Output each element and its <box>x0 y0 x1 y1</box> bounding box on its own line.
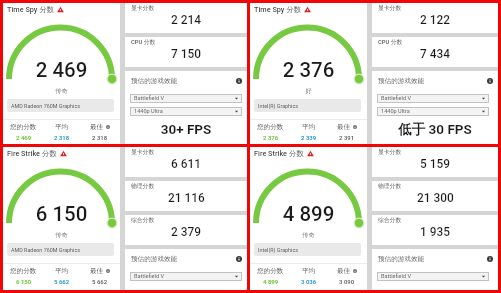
button[interactable]: 显卡分数 <box>372 147 498 177</box>
button[interactable]: 平均 <box>290 267 328 285</box>
staticText: 2 318 <box>54 134 70 141</box>
staticText: 物理分数 <box>131 182 155 189</box>
button[interactable]: Battlefield V <box>377 272 489 281</box>
staticText: 2 214 <box>171 13 201 27</box>
staticText: Battlefield V <box>134 273 165 280</box>
staticText: 1 935 <box>420 225 450 239</box>
staticText: 显卡分数 <box>378 148 402 155</box>
staticText: 平均 <box>55 123 69 131</box>
staticText: 预估的游戏效能 <box>131 255 178 263</box>
staticText: 3 036 <box>301 278 317 285</box>
staticText: 显卡分数 <box>131 148 155 155</box>
staticText: 21 116 <box>168 191 205 205</box>
staticText: 5 159 <box>420 157 450 171</box>
staticText: 2 391 <box>339 134 355 141</box>
staticText: 平均 <box>55 267 69 275</box>
button[interactable]: Info <box>487 256 493 262</box>
staticText: 6 150 <box>3 202 120 226</box>
button[interactable]: 物理分数 <box>372 181 498 211</box>
staticText: 2 379 <box>171 225 201 239</box>
staticText: 传奇 <box>3 231 120 239</box>
staticText: Fire Strike 分数 <box>254 149 304 158</box>
staticText: Fire Strike 分数 <box>7 149 57 158</box>
staticText: 最佳 <box>337 267 351 275</box>
button[interactable]: 显卡分数 <box>125 3 247 33</box>
button[interactable]: CPU 分数 <box>125 37 247 67</box>
staticText: 21 300 <box>417 191 454 205</box>
staticText: 2 469 <box>3 58 120 82</box>
button[interactable]: 您的分数 <box>251 123 290 141</box>
staticText: 传奇 <box>250 231 367 239</box>
staticText: Time Spy 分数 <box>254 5 301 14</box>
staticText: 3 090 <box>339 278 355 285</box>
button[interactable]: 最佳 <box>81 123 119 141</box>
staticText: 物理分数 <box>378 182 402 189</box>
staticText: 显卡分数 <box>131 4 155 11</box>
button[interactable]: CPU 分数 <box>372 37 498 67</box>
staticText: 最佳 <box>90 123 104 131</box>
staticText: AMD Radeon 760M Graphics <box>11 247 81 253</box>
button[interactable]: 最佳 <box>328 123 366 141</box>
button[interactable]: 平均 <box>290 123 328 141</box>
staticText: 4 899 <box>250 202 367 226</box>
staticText: 6 150 <box>16 278 32 285</box>
staticText: 传奇 <box>3 87 120 95</box>
button[interactable]: 综合分数 <box>125 215 247 245</box>
staticText: 5 662 <box>54 278 70 285</box>
staticText: 2 376 <box>250 58 367 82</box>
staticText: 7 434 <box>420 47 450 61</box>
button[interactable]: Battlefield V <box>377 94 489 103</box>
staticText: 6 611 <box>171 157 201 171</box>
staticText: 低于 30 FPS <box>372 121 498 138</box>
staticText: 您的分数 <box>10 267 37 275</box>
staticText: 您的分数 <box>257 123 284 131</box>
staticText: 最佳 <box>337 123 351 131</box>
staticText: Time Spy 分数 <box>7 5 54 14</box>
button[interactable]: 您的分数 <box>4 123 43 141</box>
staticText: 预估的游戏效能 <box>378 255 425 263</box>
staticText: 最佳 <box>90 267 104 275</box>
button[interactable]: 1440p Ultra <box>130 107 242 116</box>
button[interactable]: Battlefield V <box>130 94 242 103</box>
staticText: 平均 <box>302 267 316 275</box>
staticText: 30+ FPS <box>125 121 247 137</box>
button[interactable]: 平均 <box>43 123 81 141</box>
staticText: 2 122 <box>420 13 450 27</box>
staticText: CPU 分数 <box>131 38 156 45</box>
staticText: Battlefield V <box>134 95 165 102</box>
staticText: 2 376 <box>263 134 279 141</box>
staticText: 显卡分数 <box>378 4 402 11</box>
staticText: Intel(R) Graphics <box>258 247 298 253</box>
staticText: 1440p Ultra <box>134 108 163 115</box>
staticText: AMD Radeon 760M Graphics <box>11 103 81 109</box>
staticText: Battlefield V <box>381 95 412 102</box>
button[interactable]: 最佳 <box>328 267 366 285</box>
button[interactable]: 物理分数 <box>125 181 247 211</box>
button[interactable]: Info <box>236 256 242 262</box>
button[interactable]: 最佳 <box>81 267 119 285</box>
button[interactable]: 显卡分数 <box>372 3 498 33</box>
button[interactable]: 1440p Ultra <box>377 107 489 116</box>
button[interactable]: 您的分数 <box>4 267 43 285</box>
staticText: 好 <box>250 87 367 95</box>
staticText: 预估的游戏效能 <box>378 77 425 85</box>
staticText: CPU 分数 <box>378 38 403 45</box>
staticText: 4 899 <box>263 278 279 285</box>
button[interactable]: Info <box>487 78 493 84</box>
staticText: 2 469 <box>16 134 32 141</box>
staticText: 您的分数 <box>257 267 284 275</box>
button[interactable]: Info <box>236 78 242 84</box>
button[interactable]: 综合分数 <box>372 215 498 245</box>
staticText: 1440p Ultra <box>381 108 410 115</box>
button[interactable]: 显卡分数 <box>125 147 247 177</box>
staticText: 5 662 <box>92 278 108 285</box>
staticText: 2 318 <box>92 134 108 141</box>
button[interactable]: Battlefield V <box>130 272 242 281</box>
staticText: 2 339 <box>301 134 317 141</box>
staticText: Battlefield V <box>381 273 412 280</box>
button[interactable]: 平均 <box>43 267 81 285</box>
staticText: 综合分数 <box>131 216 155 223</box>
staticText: 您的分数 <box>10 123 37 131</box>
staticText: 综合分数 <box>378 216 402 223</box>
button[interactable]: 您的分数 <box>251 267 290 285</box>
